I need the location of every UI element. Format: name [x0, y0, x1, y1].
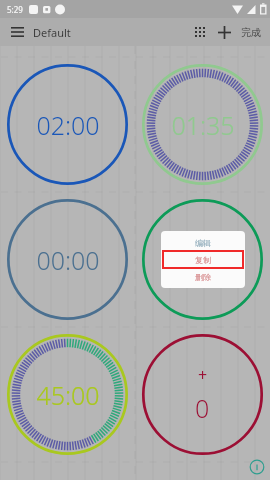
staticText: 编辑 — [195, 238, 211, 248]
staticText: 完成 — [241, 26, 261, 39]
button[interactable]: 02:00 — [0, 57, 135, 192]
button[interactable]: 删除 — [161, 268, 245, 285]
staticText: 01:35 — [171, 108, 235, 142]
staticText: 复制 — [195, 255, 211, 265]
staticText: 删除 — [195, 272, 211, 282]
button[interactable]: Open navigation menu — [5, 20, 29, 44]
button[interactable]: 45:00 — [0, 327, 135, 462]
button[interactable]: Grid layout — [188, 20, 212, 44]
staticText: Default — [33, 25, 71, 40]
button[interactable]: 复制 — [161, 251, 245, 268]
staticText: 00:00 — [36, 243, 100, 277]
button[interactable]: 00:00 — [0, 192, 135, 327]
staticText: 45:00 — [36, 378, 100, 412]
button[interactable]: 01:35 — [135, 57, 270, 192]
staticText: 0 — [195, 391, 210, 425]
button[interactable]: + — [135, 327, 270, 462]
button[interactable]: 完成 — [236, 21, 266, 44]
staticText: 02:00 — [36, 108, 100, 142]
button[interactable]: 编辑 — [161, 234, 245, 251]
button[interactable]: 编辑 — [135, 192, 270, 327]
staticText: 5:29 — [7, 4, 23, 15]
button[interactable]: Add timer — [212, 20, 236, 44]
button[interactable]: Info — [249, 459, 265, 475]
staticText: + — [198, 364, 208, 386]
